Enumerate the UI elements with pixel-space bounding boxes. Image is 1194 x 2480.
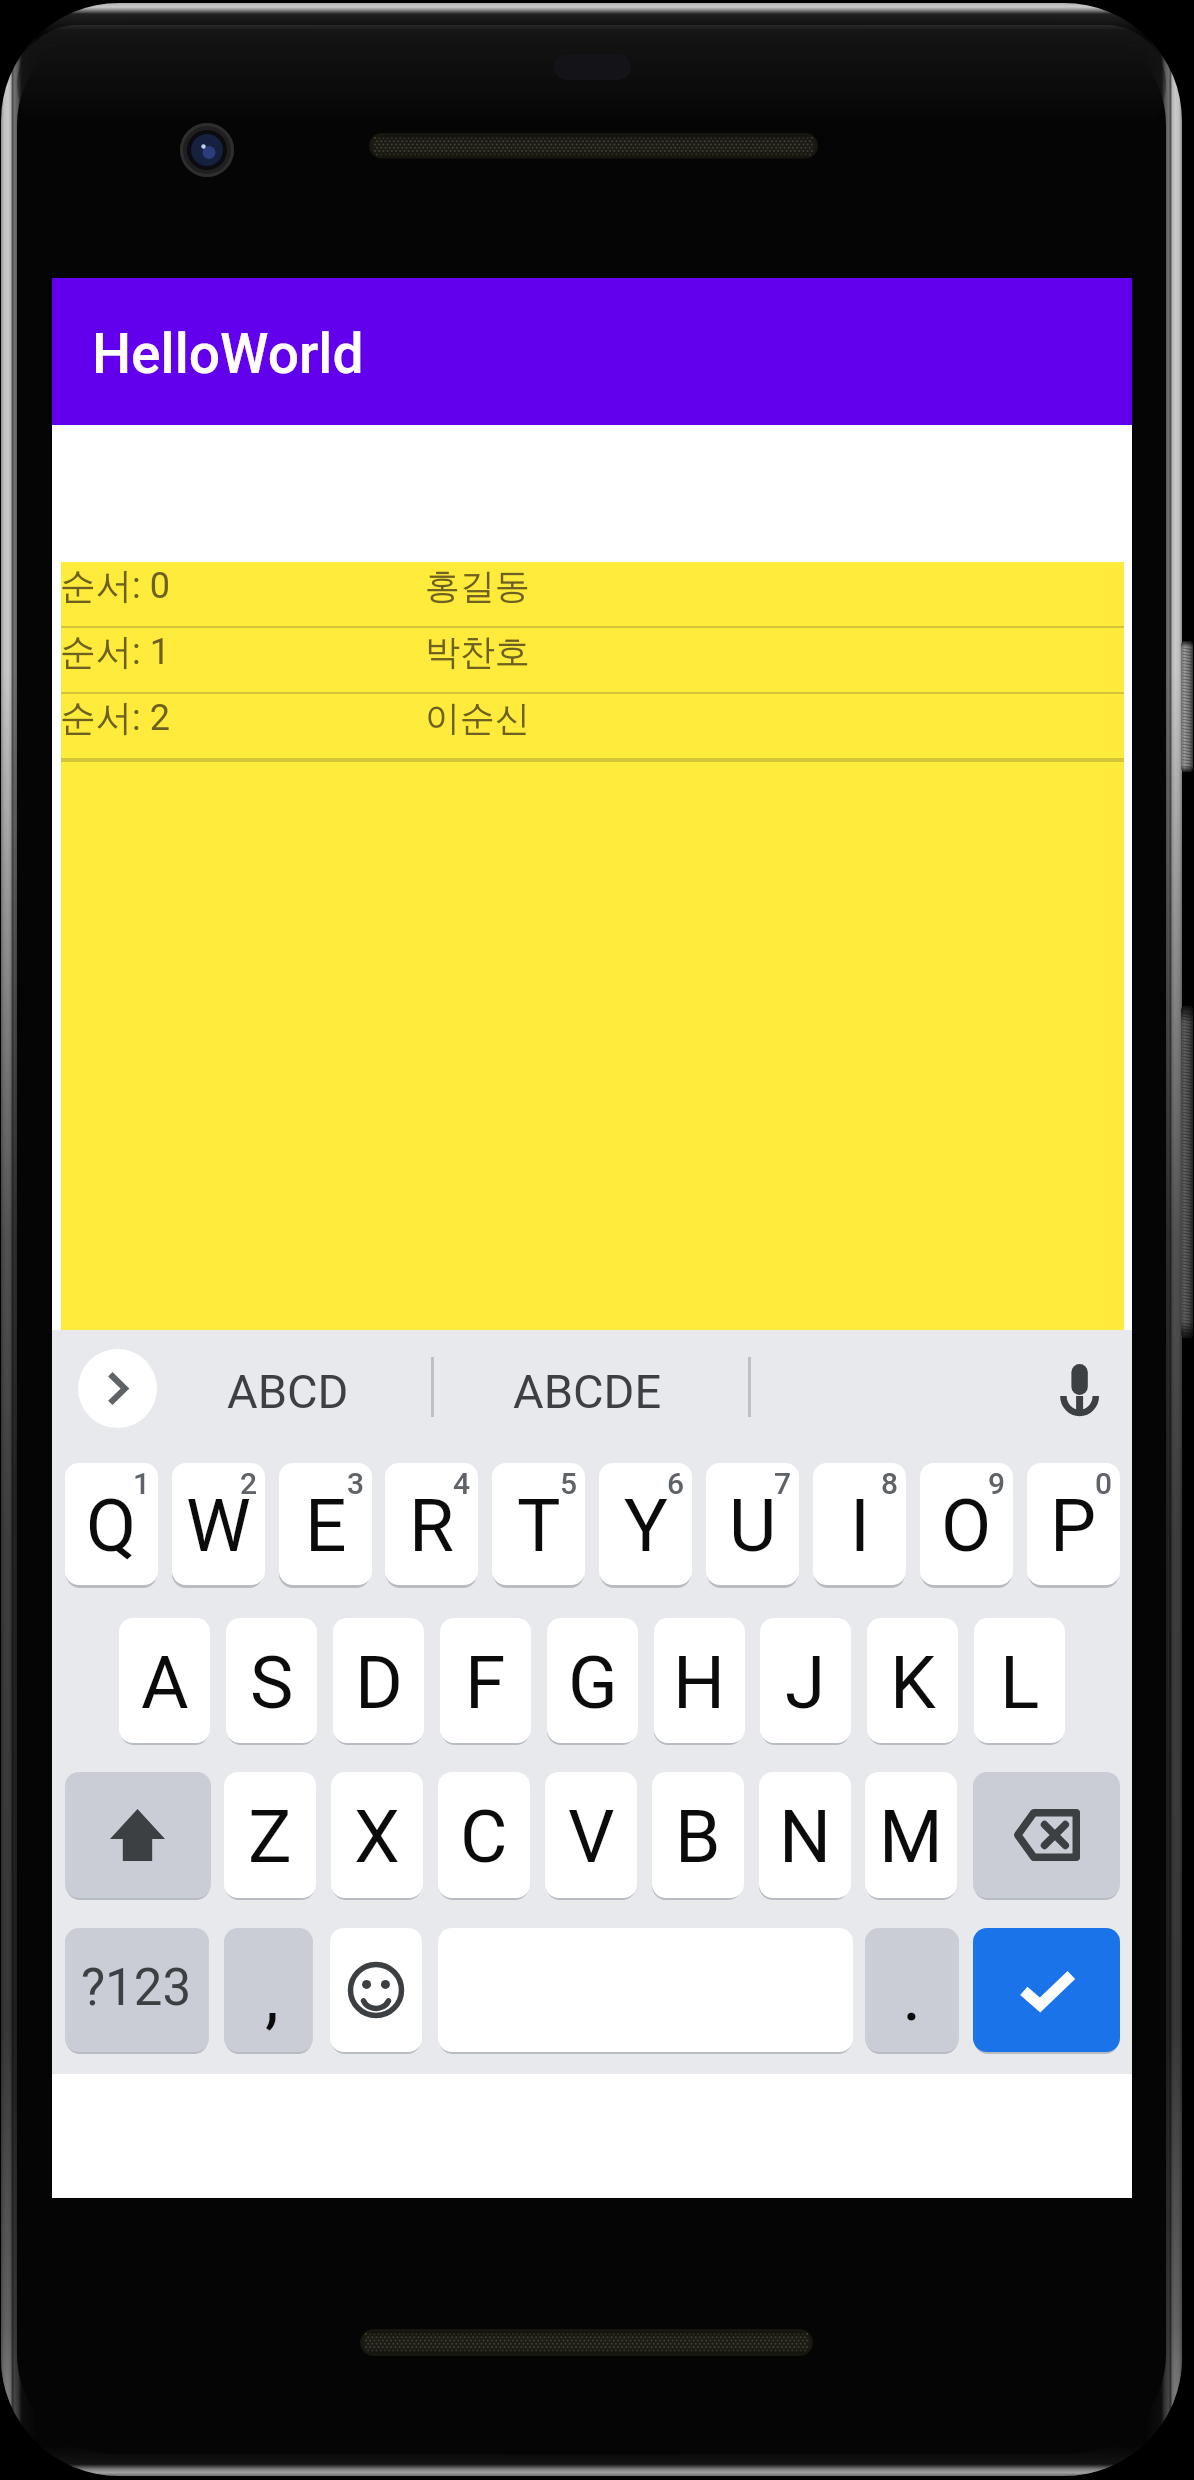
button[interactable]: P (1027, 1463, 1120, 1585)
staticText: E (305, 1483, 347, 1569)
staticText: T (517, 1483, 561, 1569)
staticText: 순서: 0 (60, 563, 170, 608)
button[interactable]: W (172, 1463, 265, 1585)
staticText: R (409, 1483, 454, 1569)
staticText: 8 (881, 1466, 899, 1501)
button[interactable]: V (545, 1772, 637, 1898)
button[interactable]: HelloWorld (52, 278, 1132, 425)
staticText: ?123 (81, 1958, 192, 2018)
button[interactable]: H (654, 1618, 745, 1743)
staticText: G (568, 1640, 618, 1726)
button[interactable]: L (974, 1618, 1065, 1743)
staticText: ABCD (227, 1364, 349, 1419)
staticText: 5 (560, 1466, 578, 1501)
staticText: , (265, 1956, 279, 2038)
button[interactable]: Period (865, 1928, 959, 2052)
staticText: L (1000, 1640, 1040, 1726)
staticText: J (785, 1640, 826, 1726)
button[interactable]: Z (224, 1772, 316, 1898)
button[interactable]: J (760, 1618, 851, 1743)
button[interactable]: Shift (65, 1772, 211, 1898)
staticText: P (1050, 1483, 1097, 1569)
staticText: . (904, 1972, 920, 2033)
button[interactable]: E (279, 1463, 372, 1585)
staticText: K (890, 1640, 936, 1726)
staticText: H (673, 1640, 726, 1726)
staticText: S (250, 1640, 294, 1726)
staticText: 박찬호 (425, 630, 530, 674)
button[interactable]: T (492, 1463, 585, 1585)
button[interactable]: Enter (973, 1928, 1120, 2052)
button[interactable]: Backspace (973, 1772, 1120, 1898)
staticText: M (879, 1794, 943, 1880)
staticText: X (354, 1794, 400, 1880)
staticText: HelloWorld (92, 322, 364, 386)
staticText: 6 (667, 1466, 685, 1501)
button[interactable]: ABCDE (452, 1341, 722, 1441)
button[interactable]: C (438, 1772, 530, 1898)
button[interactable]: Y (599, 1463, 692, 1585)
staticText: A (141, 1640, 189, 1726)
button[interactable]: N (759, 1772, 851, 1898)
staticText: U (729, 1483, 777, 1569)
staticText: 9 (988, 1466, 1006, 1501)
staticText: B (675, 1794, 721, 1880)
button[interactable]: F (440, 1618, 531, 1743)
button[interactable]: B (652, 1772, 744, 1898)
staticText: 순서: 1 (60, 629, 170, 674)
button[interactable]: 순서: 1 (61, 628, 1124, 694)
staticText: 7 (774, 1466, 792, 1501)
staticText: F (465, 1640, 506, 1726)
button[interactable]: ?123 (65, 1928, 209, 2052)
staticText: 이순신 (425, 696, 530, 740)
button[interactable]: 순서: 0 (61, 562, 1124, 628)
button[interactable]: Comma (224, 1928, 313, 2052)
staticText: ABCDE (513, 1364, 662, 1419)
button[interactable]: Voice input (1030, 1334, 1130, 1434)
button[interactable]: Expand suggestions (78, 1349, 157, 1428)
button[interactable]: M (865, 1772, 957, 1898)
staticText: 0 (1095, 1466, 1113, 1501)
button[interactable]: S (226, 1618, 317, 1743)
staticText: V (568, 1794, 615, 1880)
button[interactable]: Q (65, 1463, 158, 1585)
button[interactable]: G (547, 1618, 638, 1743)
button[interactable]: R (385, 1463, 478, 1585)
button[interactable]: I (813, 1463, 906, 1585)
staticText: I (850, 1483, 870, 1569)
staticText: 2 (240, 1466, 258, 1501)
staticText: W (186, 1483, 251, 1569)
staticText: 홍길동 (425, 564, 530, 608)
staticText: Y (624, 1483, 668, 1569)
button[interactable]: D (333, 1618, 424, 1743)
button[interactable]: A (119, 1618, 210, 1743)
staticText: O (941, 1483, 992, 1569)
button[interactable]: O (920, 1463, 1013, 1585)
button[interactable]: X (331, 1772, 423, 1898)
staticText: 4 (453, 1466, 471, 1501)
button[interactable]: U (706, 1463, 799, 1585)
button[interactable]: K (867, 1618, 958, 1743)
staticText: Z (248, 1794, 292, 1880)
staticText: N (779, 1794, 832, 1880)
staticText: Q (86, 1483, 137, 1569)
staticText: C (460, 1794, 508, 1880)
staticText: D (355, 1640, 403, 1726)
button[interactable]: Emoji (330, 1928, 422, 2052)
staticText: 3 (347, 1466, 365, 1501)
button[interactable]: ABCD (173, 1341, 403, 1441)
staticText: 순서: 2 (60, 695, 170, 740)
staticText: 1 (133, 1466, 151, 1501)
button[interactable]: 순서: 2 (61, 694, 1124, 760)
